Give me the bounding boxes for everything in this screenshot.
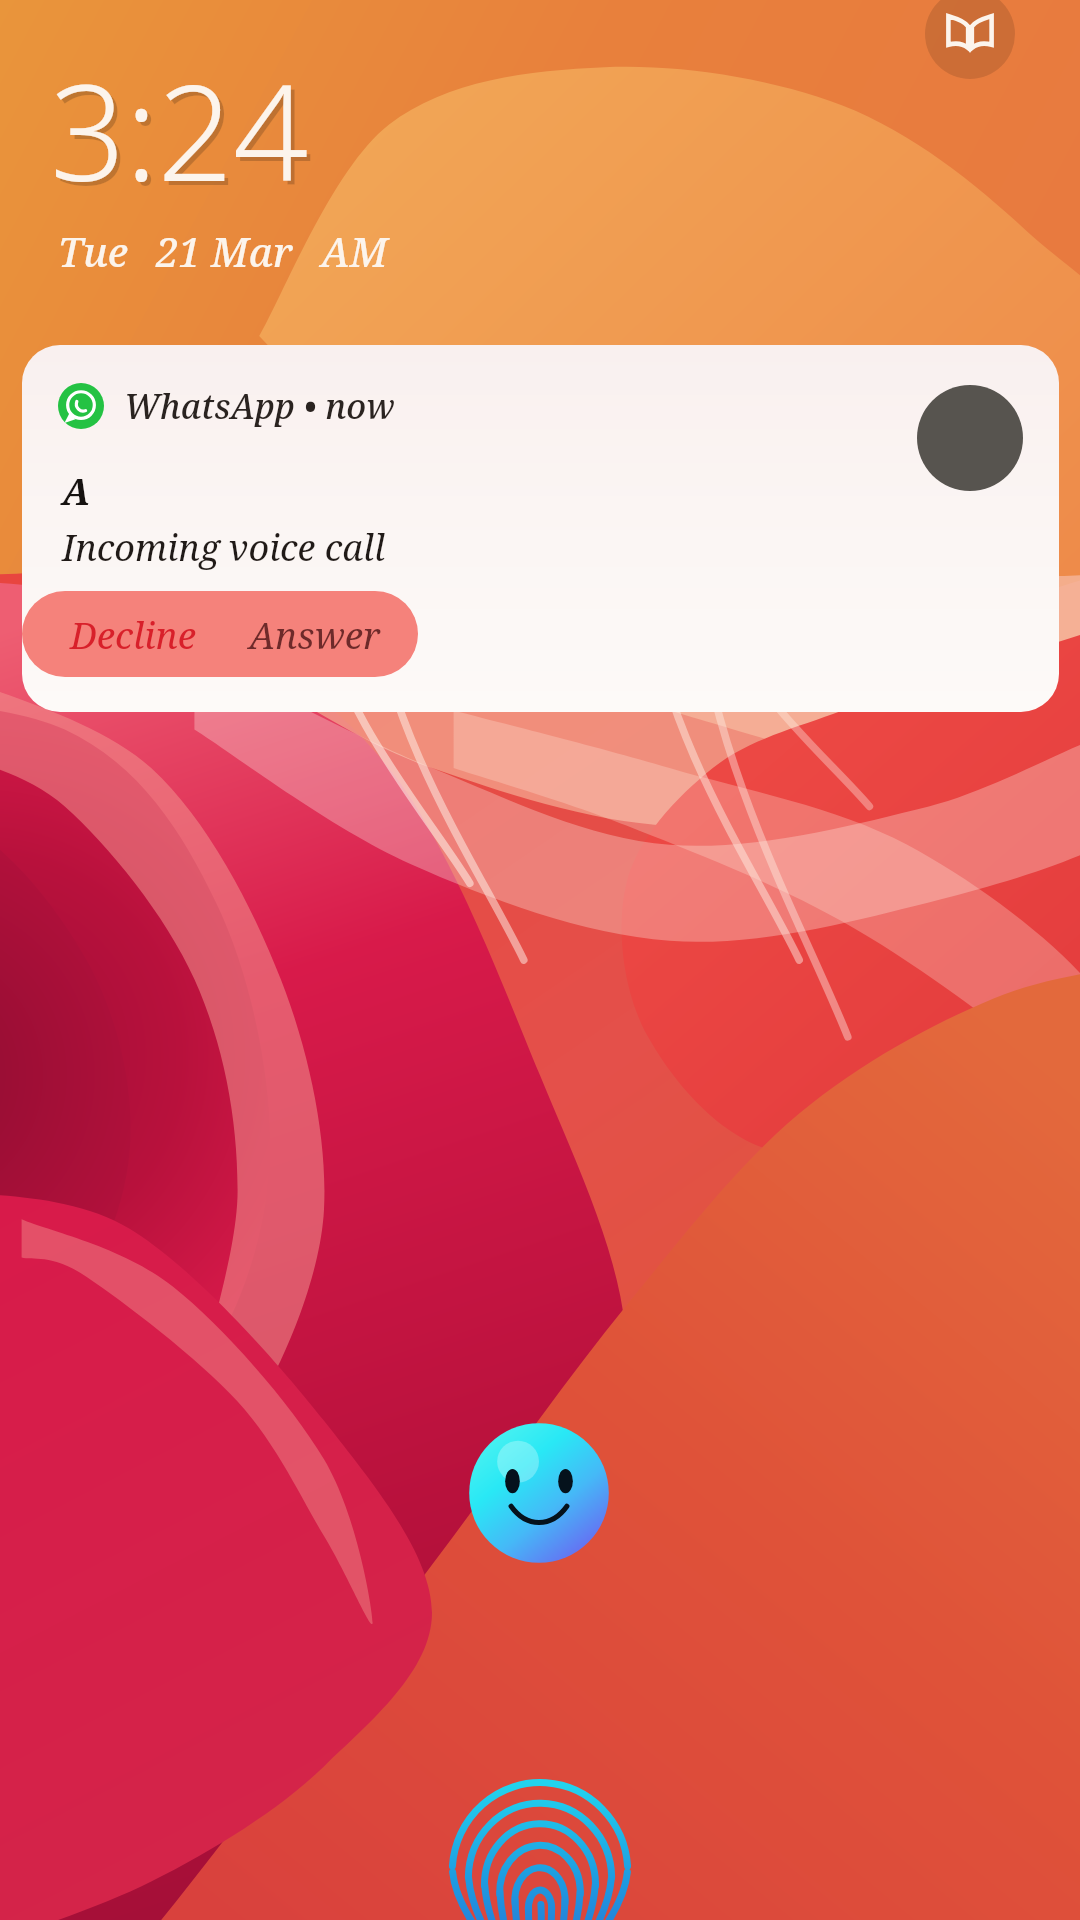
button[interactable]: Fingerprint unlock [428, 1762, 652, 1920]
button[interactable]: Answer [220, 591, 418, 677]
staticText: Tue [58, 224, 128, 278]
staticText: 3:24 [50, 40, 309, 220]
staticText: 21 Mar [156, 224, 293, 278]
staticText: AM [321, 224, 388, 278]
staticText: A [62, 465, 90, 515]
button[interactable]: WhatsApp • now [22, 345, 1059, 712]
button[interactable]: Caller photo [917, 385, 1023, 491]
staticText: Decline [70, 609, 196, 659]
button[interactable]: Decline [22, 591, 220, 677]
button[interactable]: Reading mode [925, 0, 1015, 79]
staticText: WhatsApp • now [124, 383, 395, 429]
staticText: 3:24 [54, 44, 313, 224]
staticText: Incoming voice call [62, 523, 385, 572]
button[interactable]: Assistant [466, 1420, 612, 1566]
staticText: Answer [249, 609, 381, 659]
